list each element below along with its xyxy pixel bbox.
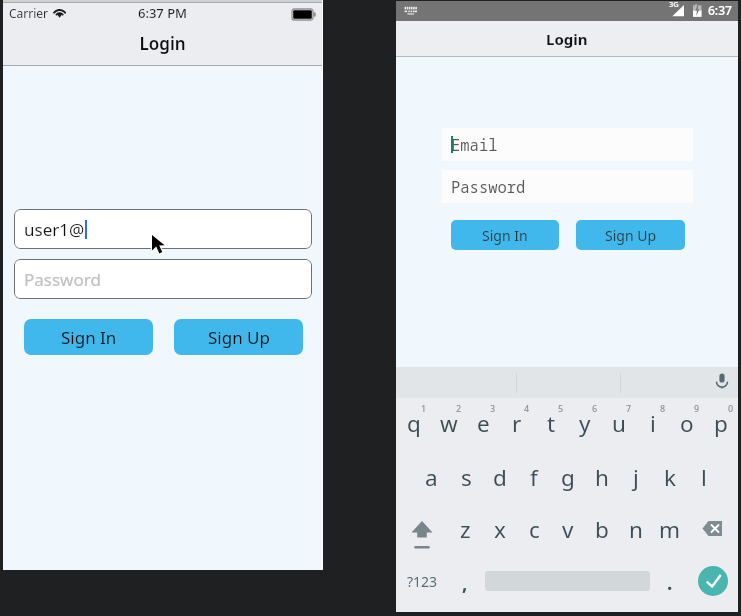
button[interactable]: Enter [687, 554, 738, 612]
button[interactable]: d [483, 450, 517, 502]
button[interactable]: a [414, 450, 449, 502]
staticText: z [460, 514, 471, 545]
staticText: Password [451, 176, 526, 197]
staticText: 2 [456, 402, 462, 414]
staticText: 7 [626, 402, 632, 414]
staticText: q [407, 408, 421, 439]
staticText: v [562, 514, 574, 545]
staticText: a [425, 462, 438, 493]
button[interactable]: 4 [500, 398, 534, 450]
staticText: Sign Up [605, 226, 657, 245]
button[interactable]: 7 [602, 398, 636, 450]
button[interactable]: Password [442, 170, 693, 203]
button[interactable]: . [653, 554, 687, 612]
staticText: k [664, 462, 677, 493]
staticText: 9 [694, 402, 700, 414]
staticText: u [612, 408, 626, 439]
button[interactable]: Sign In [24, 319, 153, 355]
staticText: Sign In [61, 326, 117, 349]
button[interactable]: user1@ [14, 209, 312, 249]
staticText: d [493, 462, 507, 493]
staticText: Password [24, 268, 101, 291]
staticText: user1@ [24, 218, 85, 241]
button[interactable]: 6 [568, 398, 602, 450]
button[interactable]: 3 [466, 398, 500, 450]
staticText: i [650, 408, 656, 439]
button[interactable]: 5 [534, 398, 568, 450]
button[interactable]: n [619, 502, 653, 554]
staticText: 1 [421, 402, 427, 414]
button[interactable]: z [448, 502, 483, 554]
button[interactable]: Space [482, 554, 653, 612]
staticText: l [701, 462, 707, 493]
staticText: w [440, 408, 458, 439]
staticText: x [494, 514, 506, 545]
button[interactable]: Sign In [451, 220, 559, 250]
staticText: g [561, 462, 575, 493]
staticText: Login [3, 32, 322, 55]
staticText: h [595, 462, 609, 493]
staticText: m [659, 514, 681, 545]
staticText: y [579, 408, 591, 439]
button[interactable]: 8 [636, 398, 670, 450]
button[interactable]: 2 [431, 398, 466, 450]
staticText: Sign Up [208, 326, 270, 349]
button[interactable]: Voice input [708, 367, 738, 398]
button[interactable]: g [551, 450, 585, 502]
staticText: Sign In [482, 226, 528, 245]
button[interactable]: v [551, 502, 585, 554]
button[interactable]: Sign Up [174, 319, 303, 355]
staticText: b [595, 514, 609, 545]
staticText: s [461, 462, 472, 493]
button[interactable]: b [585, 502, 619, 554]
staticText: 3G [669, 0, 679, 9]
staticText: n [629, 514, 643, 545]
staticText: t [547, 408, 556, 439]
staticText: Email [451, 134, 498, 155]
button[interactable]: 1 [396, 398, 431, 450]
staticText: 6 [592, 402, 598, 414]
staticText: p [714, 408, 728, 439]
staticText: 3 [490, 402, 496, 414]
button[interactable]: 0 [704, 398, 738, 450]
button[interactable]: s [449, 450, 483, 502]
staticText: 0 [728, 402, 734, 414]
staticText: j [633, 462, 639, 493]
staticText: 6:37 [708, 2, 732, 18]
staticText: Carrier [9, 5, 49, 21]
staticText: 6:37 PM [3, 4, 322, 22]
staticText: r [512, 408, 522, 439]
button[interactable]: m [653, 502, 687, 554]
button[interactable]: c [517, 502, 551, 554]
staticText: o [680, 408, 694, 439]
staticText: Login [546, 29, 588, 49]
button[interactable]: f [517, 450, 551, 502]
button[interactable]: Shift [396, 502, 448, 554]
button[interactable]: ?123 [396, 554, 448, 612]
staticText: ?123 [407, 572, 438, 591]
button[interactable]: Password [14, 259, 312, 299]
button[interactable]: k [653, 450, 687, 502]
button[interactable]: Backspace [687, 502, 738, 554]
button[interactable]: , [448, 554, 482, 612]
staticText: c [529, 514, 540, 545]
button[interactable]: Email [442, 128, 693, 161]
button[interactable]: 9 [670, 398, 704, 450]
button[interactable]: x [483, 502, 517, 554]
staticText: 5 [558, 402, 564, 414]
button[interactable]: j [619, 450, 653, 502]
button[interactable]: l [687, 450, 721, 502]
staticText: . [667, 570, 673, 596]
staticText: f [530, 462, 538, 493]
staticText: , [462, 570, 468, 596]
button[interactable]: h [585, 450, 619, 502]
staticText: 8 [660, 402, 666, 414]
button[interactable]: Sign Up [576, 220, 685, 250]
staticText: 4 [524, 402, 530, 414]
staticText: e [477, 408, 490, 439]
